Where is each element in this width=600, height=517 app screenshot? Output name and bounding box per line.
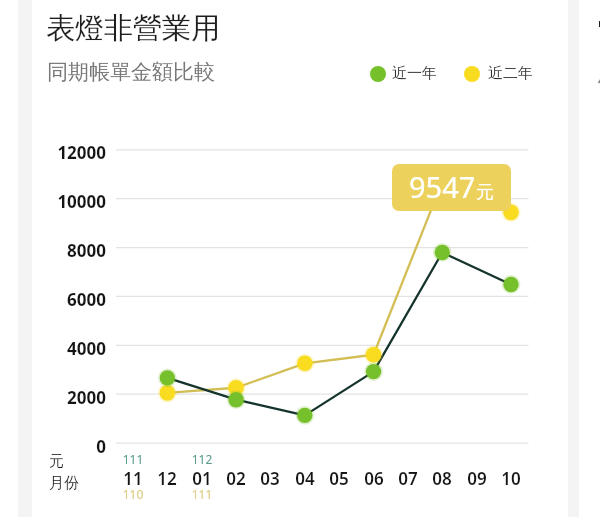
staticText: 表燈非營業用 — [46, 10, 220, 47]
staticText: 4000 — [30, 337, 106, 360]
button[interactable]: 近一年 — [370, 64, 437, 83]
button[interactable]: 9547 — [392, 164, 511, 211]
staticText: 111 — [182, 486, 222, 502]
staticText: 111 — [113, 451, 153, 467]
staticText: 09 — [457, 467, 497, 490]
staticText: 11 — [113, 467, 153, 490]
staticText: 06 — [354, 467, 394, 490]
staticText: 04 — [285, 467, 325, 490]
staticText: 112 — [182, 451, 222, 467]
staticText: 用 — [597, 61, 600, 87]
staticText: 08 — [422, 467, 462, 490]
staticText: 10000 — [30, 190, 106, 213]
button[interactable]: 表燈非營業用 — [32, 0, 568, 517]
staticText: 8000 — [30, 239, 106, 262]
staticText: 07 — [388, 467, 428, 490]
button[interactable]: 近二年 — [464, 64, 533, 83]
staticText: 05 — [319, 467, 359, 490]
staticText: 01 — [182, 467, 222, 490]
staticText: 電 — [596, 13, 600, 50]
staticText: 近二年 — [488, 64, 533, 83]
staticText: 10 — [491, 467, 531, 490]
staticText: 02 — [216, 467, 256, 490]
staticText: 元 — [49, 452, 64, 471]
staticText: 9547 — [409, 167, 476, 206]
staticText: 0 — [30, 435, 106, 458]
staticText: 月份 — [49, 474, 79, 493]
staticText: 同期帳單金額比較 — [47, 59, 215, 85]
staticText: 12 — [147, 467, 187, 490]
staticText: 03 — [250, 467, 290, 490]
staticText: 12000 — [30, 141, 106, 164]
staticText: 110 — [113, 486, 153, 502]
staticText: 近一年 — [392, 64, 437, 83]
staticText: 6000 — [30, 288, 106, 311]
staticText: 2000 — [30, 386, 106, 409]
staticText: 元 — [476, 181, 494, 204]
